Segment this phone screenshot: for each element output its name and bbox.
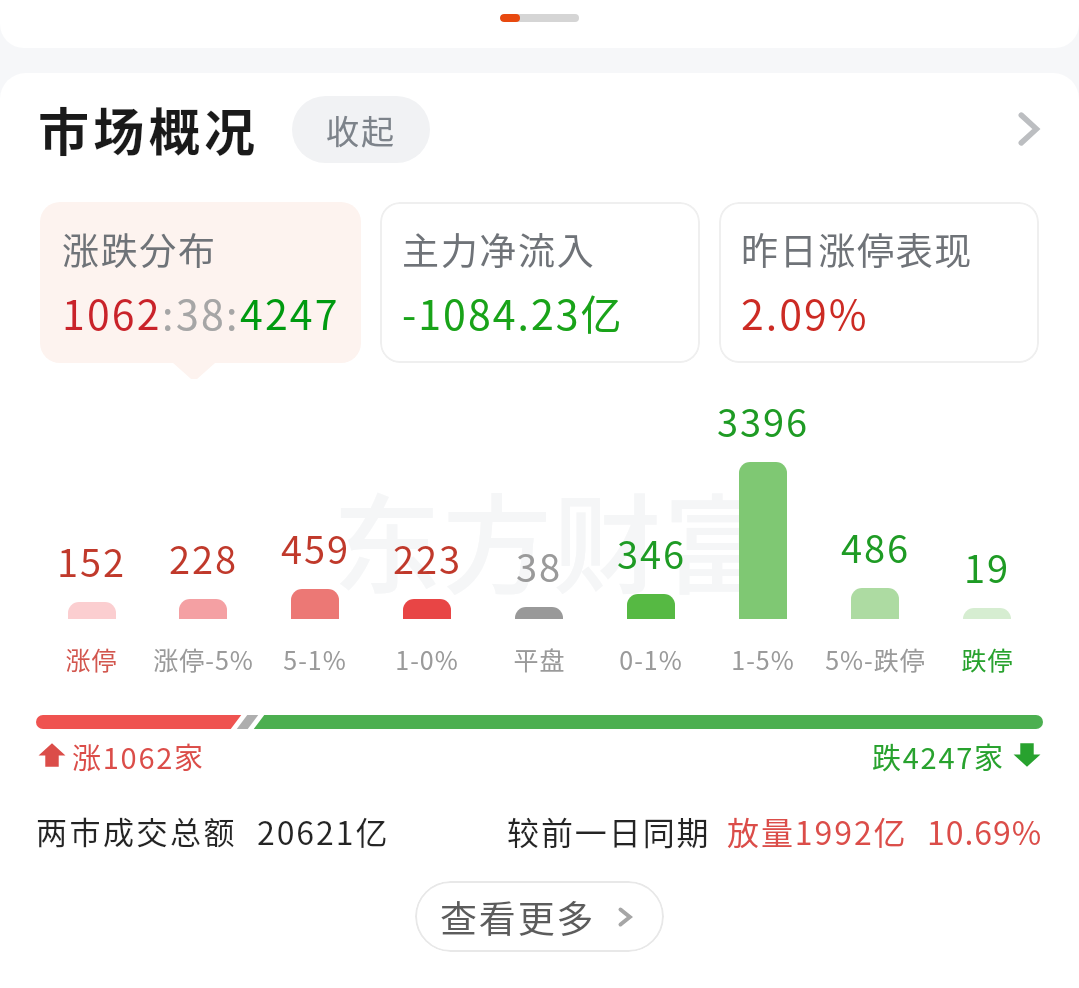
staticText: 0-1% <box>619 641 683 677</box>
staticText: 1-0% <box>395 641 459 677</box>
staticText: 1-5% <box>731 641 795 677</box>
staticText: 较前一日同期 <box>507 808 711 850</box>
staticText: 主力净流入 <box>402 222 596 276</box>
staticText: 涨停-5% <box>153 641 254 677</box>
staticText: 346 <box>617 525 686 580</box>
button[interactable]: 收起 <box>292 96 430 163</box>
staticText: : <box>226 282 240 341</box>
staticText: 收起 <box>326 106 396 154</box>
button[interactable]: 主力净流入 <box>380 202 700 363</box>
staticText: 涨跌分布 <box>62 222 217 276</box>
button[interactable]: 展开市场概况 <box>999 100 1057 158</box>
staticText: 223 <box>393 530 462 585</box>
staticText: 1062 <box>62 282 162 341</box>
staticText: 38 <box>176 282 226 341</box>
staticText: 10.69% <box>927 808 1043 850</box>
staticText: 38 <box>516 538 562 593</box>
button[interactable]: 昨日涨停表现 <box>719 202 1039 363</box>
staticText: -1084.23亿 <box>402 282 624 341</box>
staticText: 228 <box>169 530 238 585</box>
staticText: 涨停 <box>65 641 118 677</box>
button[interactable]: 页面指示器 <box>500 14 579 22</box>
staticText: 152 <box>57 533 126 588</box>
staticText: 市场概况 <box>38 92 260 166</box>
staticText: 昨日涨停表现 <box>741 222 973 276</box>
staticText: 19 <box>964 539 1010 594</box>
staticText: 涨1062家 <box>72 735 205 775</box>
staticText: 两市成交总额 <box>36 808 237 850</box>
staticText: 3396 <box>717 393 809 448</box>
button[interactable]: 查看更多 <box>415 881 664 952</box>
staticText: 平盘 <box>513 641 566 677</box>
staticText: 5-1% <box>283 641 347 677</box>
staticText: 459 <box>281 520 350 575</box>
staticText: 4247 <box>240 282 340 341</box>
button[interactable]: 涨跌分布 <box>40 202 361 363</box>
staticText: 5%-跌停 <box>825 641 926 677</box>
staticText: 2.09% <box>741 282 869 341</box>
staticText: 跌停 <box>961 641 1014 677</box>
staticText: : <box>162 282 176 341</box>
staticText: 跌4247家 <box>872 735 1005 775</box>
staticText: 20621亿 <box>257 808 390 850</box>
staticText: 486 <box>841 519 910 574</box>
staticText: 东方财富 <box>333 460 774 616</box>
staticText: 放量1992亿 <box>727 808 908 850</box>
staticText: 查看更多 <box>440 890 596 944</box>
